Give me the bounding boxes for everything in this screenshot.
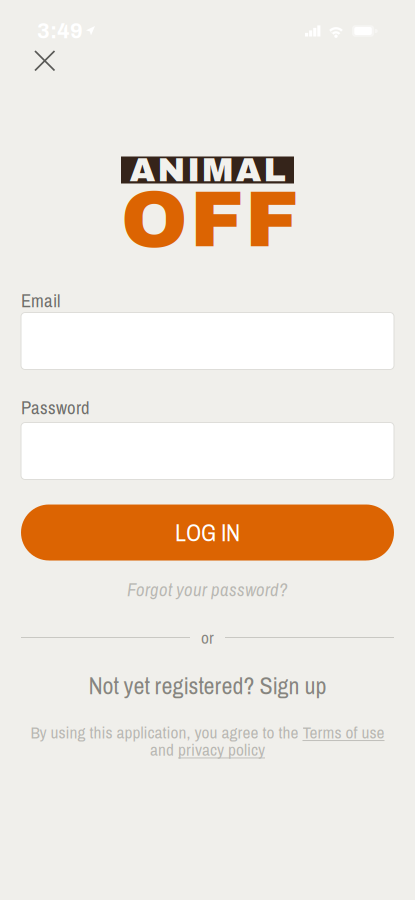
button[interactable]: LOG IN (21, 504, 394, 560)
staticText: ANIMAL (129, 152, 285, 188)
button[interactable]: Forgot your password? (0, 578, 415, 600)
staticText: 3:49 (37, 19, 83, 43)
staticText: LOG IN (175, 516, 240, 549)
button[interactable]: and privacy policy (150, 738, 265, 761)
staticText: and privacy policy (150, 738, 265, 761)
staticText: Email (21, 288, 60, 313)
staticText: OFF (121, 176, 298, 263)
staticText: By using this application, you agree to … (30, 720, 384, 744)
staticText: or (201, 626, 214, 649)
button[interactable]: Close (0, 45, 64, 76)
staticText: Password (21, 395, 90, 420)
staticText: Forgot your password? (127, 577, 288, 602)
button[interactable]: Not yet registered? Sign up (0, 672, 415, 698)
staticText: Not yet registered? Sign up (88, 669, 326, 702)
